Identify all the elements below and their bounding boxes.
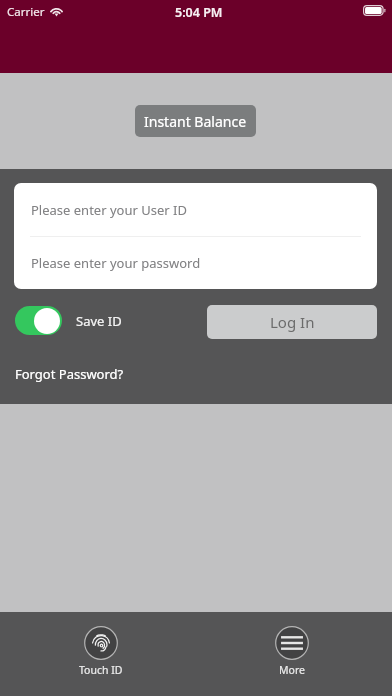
staticText: More	[279, 663, 305, 677]
staticText: 5:04 PM	[175, 4, 223, 21]
button[interactable]: More	[253, 626, 330, 677]
staticText: Forgot Password?	[15, 365, 124, 383]
other: Touch ID	[84, 626, 118, 660]
staticText: Save ID	[76, 312, 122, 330]
button[interactable]: Touch ID	[62, 626, 139, 677]
button[interactable]: Log In	[207, 305, 377, 339]
staticText: Instant Balance	[144, 112, 247, 131]
button[interactable]: Save ID	[15, 306, 122, 335]
button[interactable]: Forgot Password?	[15, 365, 124, 383]
staticText: Please enter your User ID	[31, 201, 187, 219]
staticText: Carrier	[7, 4, 45, 16]
other: More	[275, 626, 309, 660]
staticText: Touch ID	[79, 663, 123, 677]
button[interactable]: Please enter your password	[14, 237, 377, 289]
staticText: Log In	[270, 312, 315, 332]
button[interactable]: Please enter your User ID	[14, 183, 377, 236]
staticText: Please enter your password	[31, 254, 201, 272]
button[interactable]: Instant Balance	[135, 105, 256, 137]
